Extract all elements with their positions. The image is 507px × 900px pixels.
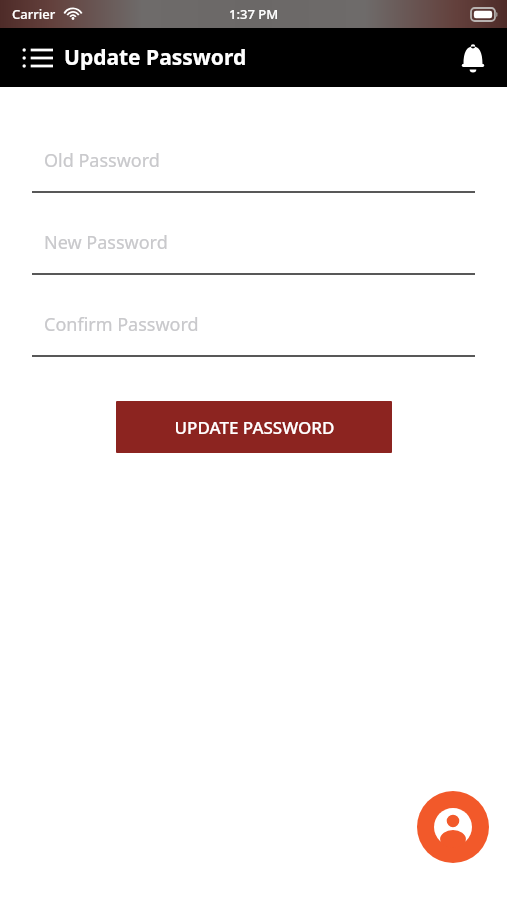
- button[interactable]: New Password: [32, 222, 475, 275]
- button[interactable]: Menu: [14, 35, 60, 81]
- button[interactable]: Account: [417, 791, 489, 863]
- button[interactable]: Old Password: [32, 140, 475, 193]
- button[interactable]: Notifications: [449, 34, 497, 82]
- staticText: UPDATE PASSWORD: [174, 416, 335, 439]
- staticText: 1:37 PM: [229, 5, 279, 23]
- staticText: Carrier: [12, 5, 56, 23]
- button[interactable]: Confirm Password: [32, 304, 475, 357]
- button[interactable]: UPDATE PASSWORD: [116, 401, 392, 453]
- staticText: Update Password: [64, 43, 247, 72]
- staticText: Confirm Password: [44, 312, 199, 337]
- staticText: Old Password: [44, 148, 160, 173]
- staticText: New Password: [44, 230, 168, 255]
